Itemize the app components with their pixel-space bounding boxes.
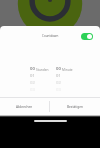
staticText: 02 [56, 80, 61, 86]
staticText: 03 [30, 87, 35, 93]
staticText: 01 [30, 73, 35, 79]
button[interactable]: Countdown ein- oder ausschalten [81, 33, 93, 40]
staticText: Stunden [36, 68, 49, 72]
staticText: Abbrechen [16, 105, 33, 109]
button[interactable]: Countdown [0, 26, 100, 45]
staticText: 02 [30, 80, 35, 86]
staticText: 00 [56, 66, 61, 72]
button[interactable]: Bestätigen [50, 98, 100, 115]
staticText: 01 [56, 73, 61, 79]
staticText: 00 [30, 66, 35, 72]
button[interactable]: Abbrechen [0, 98, 49, 115]
staticText: Countdown [42, 34, 59, 38]
staticText: Minute [62, 68, 73, 72]
staticText: 03 [56, 87, 61, 93]
staticText: Bestätigen [67, 105, 84, 109]
